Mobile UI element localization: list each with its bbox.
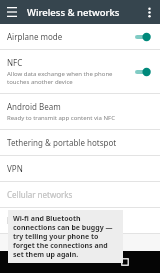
button[interactable]: Toggle NFC [135,67,153,77]
staticText: Wireless & networks [27,6,120,19]
button[interactable]: More options [141,4,157,20]
button[interactable]: Toggle Airplane mode [135,32,153,42]
button[interactable]: Recent apps [121,258,129,266]
button[interactable]: NFC [0,50,160,93]
staticText: Tethering & portable hotspot [7,137,117,148]
staticText: Allow data exchange when the phone touch… [7,70,129,86]
button[interactable]: Cellular networks [0,182,160,207]
button[interactable]: Tethering & portable hotspot [0,130,160,155]
staticText: Wi-fi and Bluetooth connections can be b… [13,214,118,259]
staticText: Ready to transmit app content via NFC [7,114,116,122]
button[interactable]: Android Beam [0,94,160,129]
button[interactable]: Open navigation drawer [4,4,20,20]
staticText: Cellular networks [7,189,73,200]
staticText: VPN [7,163,23,174]
staticText: Airplane mode [7,31,63,42]
button[interactable]: Network settings reset [0,208,160,233]
staticText: NFC [7,57,23,68]
button[interactable]: Airplane mode [0,24,160,49]
staticText: Android Beam [7,101,61,112]
staticText: Network settings reset [7,215,93,226]
button[interactable]: VPN [0,156,160,181]
